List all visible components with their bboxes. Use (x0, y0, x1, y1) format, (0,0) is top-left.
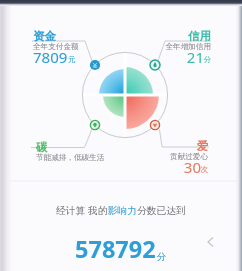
staticText: 贡献过爱心 (148, 152, 208, 162)
staticText: 爱 (148, 139, 208, 153)
staticText: 碳 (36, 140, 56, 154)
button[interactable]: 爱 (148, 139, 208, 179)
staticText: 分 (157, 251, 167, 263)
staticText: 信用 (151, 29, 211, 43)
staticText: 节能减排，低碳生活 (36, 153, 116, 163)
staticText: 7809 (33, 47, 77, 67)
staticText: 全年支付金额 (33, 42, 91, 52)
staticText: 21 (151, 47, 204, 67)
staticText: 经计算 我的影响力分数已达到 (56, 204, 186, 217)
staticText: 全年增加信用 (151, 42, 211, 52)
button[interactable]: 资金 (33, 29, 91, 69)
button[interactable]: Back (204, 235, 218, 249)
staticText: 578792 (75, 233, 156, 265)
button[interactable]: 碳 (36, 140, 116, 166)
staticText: 次 (148, 165, 208, 175)
staticText: 元 (68, 55, 82, 65)
staticText: 资金 (33, 29, 85, 43)
button[interactable]: 信用 (151, 29, 211, 69)
staticText: 分 (151, 55, 211, 65)
staticText: 30 (148, 157, 201, 177)
